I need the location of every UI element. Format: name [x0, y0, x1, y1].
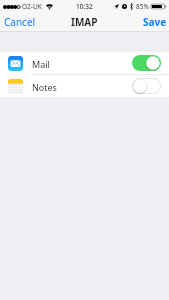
- button[interactable]: Toggle off: [132, 78, 161, 94]
- staticText: 85%: [136, 2, 149, 11]
- button[interactable]: Save: [139, 13, 169, 31]
- staticText: Cancel: [4, 15, 36, 29]
- staticText: 10:32: [76, 2, 93, 11]
- button[interactable]: Toggle on: [132, 55, 161, 71]
- staticText: O2-UK: [22, 2, 42, 11]
- staticText: Mail: [32, 58, 50, 70]
- button[interactable]: Mail: [0, 52, 169, 74]
- staticText: IMAP: [71, 15, 98, 29]
- button[interactable]: Cancel: [0, 13, 40, 31]
- staticText: Save: [143, 15, 167, 29]
- staticText: Notes: [32, 81, 57, 93]
- button[interactable]: Notes: [0, 75, 169, 97]
